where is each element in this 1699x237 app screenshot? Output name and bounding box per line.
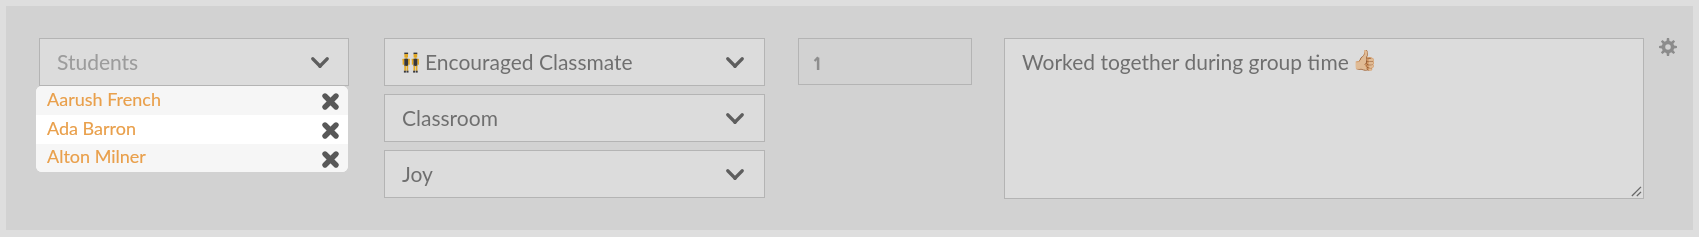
button[interactable]: Encouraged Classmate bbox=[384, 38, 765, 86]
staticText: Ada Barron bbox=[47, 117, 137, 139]
staticText: 👍🏼 bbox=[1352, 48, 1377, 71]
staticText: Students bbox=[57, 49, 139, 74]
button[interactable] bbox=[798, 38, 972, 85]
button[interactable]: Alton Milner bbox=[36, 144, 348, 172]
button[interactable]: Joy bbox=[384, 150, 765, 198]
staticText: Encouraged Classmate bbox=[425, 49, 633, 74]
button[interactable]: Settings bbox=[1658, 37, 1678, 57]
button[interactable]: Students bbox=[39, 38, 349, 86]
button[interactable]: Ada Barron bbox=[36, 115, 348, 144]
staticText: Alton Milner bbox=[47, 145, 146, 167]
button[interactable]: Remove Aarush French bbox=[322, 93, 339, 110]
staticText: Joy bbox=[402, 161, 433, 186]
staticText: Classroom bbox=[402, 105, 498, 130]
button[interactable]: Remove Ada Barron bbox=[322, 122, 339, 139]
button[interactable]: Classroom bbox=[384, 94, 765, 142]
staticText: Worked together during group time bbox=[1022, 49, 1355, 74]
button[interactable]: Aarush French bbox=[36, 86, 348, 115]
staticText: Aarush French bbox=[47, 88, 161, 110]
button[interactable]: Worked together during group time bbox=[1004, 38, 1644, 199]
button[interactable]: Remove Alton Milner bbox=[322, 151, 339, 168]
